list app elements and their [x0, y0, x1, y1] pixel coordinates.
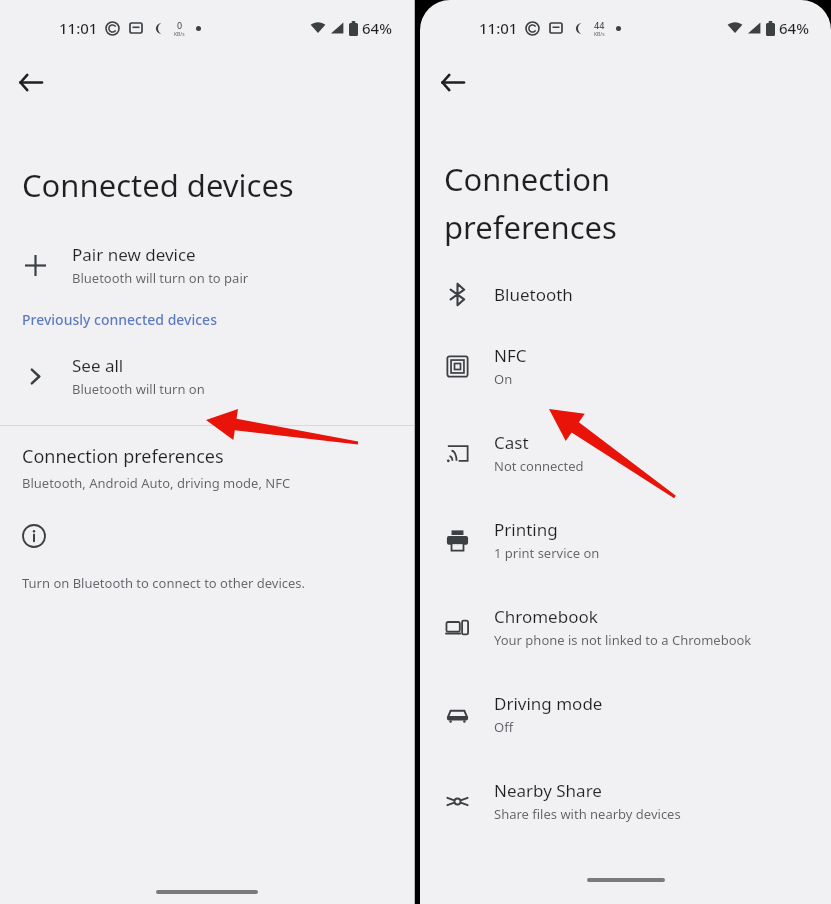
staticText: 1 print service on — [494, 544, 600, 562]
button[interactable]: Pair new device — [0, 230, 414, 300]
staticText: KB/s — [594, 31, 605, 38]
staticText: Share files with nearby devices — [494, 805, 681, 823]
staticText: preferences — [444, 206, 617, 248]
staticText: Your phone is not linked to a Chromebook — [494, 631, 752, 649]
button[interactable]: Back — [10, 62, 50, 102]
staticText: Turn on Bluetooth to connect to other de… — [22, 574, 306, 592]
staticText: Connected devices — [22, 164, 294, 206]
staticText: KB/s — [174, 31, 185, 38]
staticText: 11:01 — [479, 18, 518, 38]
button[interactable]: Nearby Share — [420, 757, 831, 844]
staticText: See all — [72, 354, 124, 377]
staticText: Previously connected devices — [22, 310, 217, 329]
staticText: On — [494, 370, 513, 388]
staticText: Bluetooth will turn on — [72, 380, 205, 398]
staticText: Connection — [444, 158, 611, 200]
staticText: Bluetooth, Android Auto, driving mode, N… — [22, 474, 291, 492]
staticText: 64% — [362, 18, 392, 38]
staticText: Connection preferences — [22, 444, 224, 469]
button[interactable]: Bluetooth — [420, 266, 831, 322]
staticText: 0 — [177, 19, 183, 31]
staticText: Printing — [494, 518, 558, 541]
button[interactable]: Back — [432, 62, 472, 102]
button[interactable]: Driving mode — [420, 670, 831, 757]
button[interactable]: Chromebook — [420, 583, 831, 670]
button[interactable]: Cast — [420, 409, 831, 496]
staticText: NFC — [494, 344, 527, 367]
staticText: 64% — [779, 18, 809, 38]
staticText: Bluetooth will turn on to pair — [72, 269, 249, 287]
staticText: Not connected — [494, 457, 584, 475]
staticText: 44 — [594, 19, 605, 31]
staticText: Bluetooth — [494, 283, 573, 306]
staticText: Pair new device — [72, 243, 196, 266]
staticText: Chromebook — [494, 605, 598, 628]
button[interactable]: NFC — [420, 322, 831, 409]
button[interactable]: Connection preferences — [0, 444, 414, 492]
staticText: Nearby Share — [494, 779, 602, 802]
staticText: Off — [494, 718, 514, 736]
button[interactable]: Previously connected devices — [0, 310, 414, 329]
button[interactable]: See all — [0, 341, 414, 411]
staticText: Cast — [494, 431, 529, 454]
staticText: 11:01 — [59, 18, 98, 38]
staticText: Driving mode — [494, 692, 603, 715]
button[interactable]: Printing — [420, 496, 831, 583]
